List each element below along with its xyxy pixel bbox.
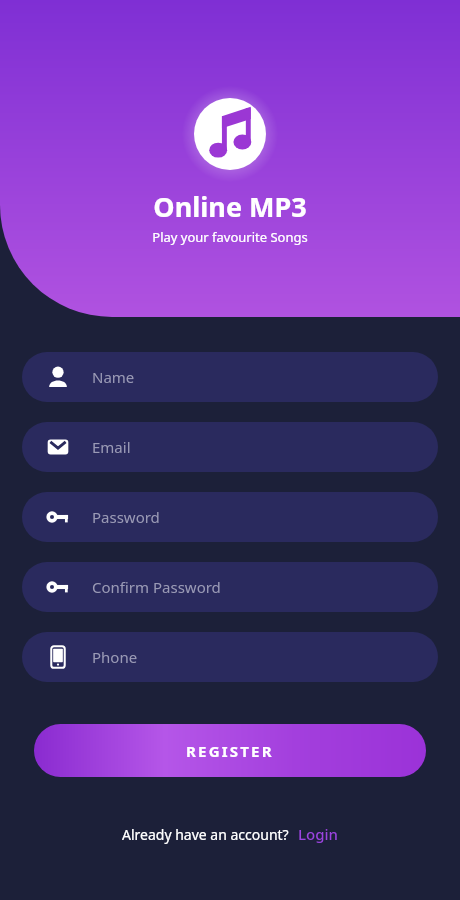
staticText: Password [92, 507, 160, 527]
button[interactable]: Name [22, 352, 438, 402]
button[interactable]: Login [298, 824, 338, 844]
button[interactable]: Confirm Password [22, 562, 438, 612]
button[interactable]: Password [22, 492, 438, 542]
staticText: Play your favourite Songs [152, 228, 308, 246]
staticText: Online MP3 [153, 188, 307, 225]
staticText: Name [92, 367, 135, 387]
button[interactable]: Email [22, 422, 438, 472]
button[interactable]: REGISTER [34, 724, 426, 777]
staticText: Login [298, 824, 338, 844]
staticText: Already have an account? [122, 825, 289, 844]
staticText: REGISTER [186, 741, 274, 761]
button[interactable]: Phone [22, 632, 438, 682]
staticText: Phone [92, 647, 138, 667]
staticText: Email [92, 437, 131, 457]
staticText: Confirm Password [92, 577, 221, 597]
